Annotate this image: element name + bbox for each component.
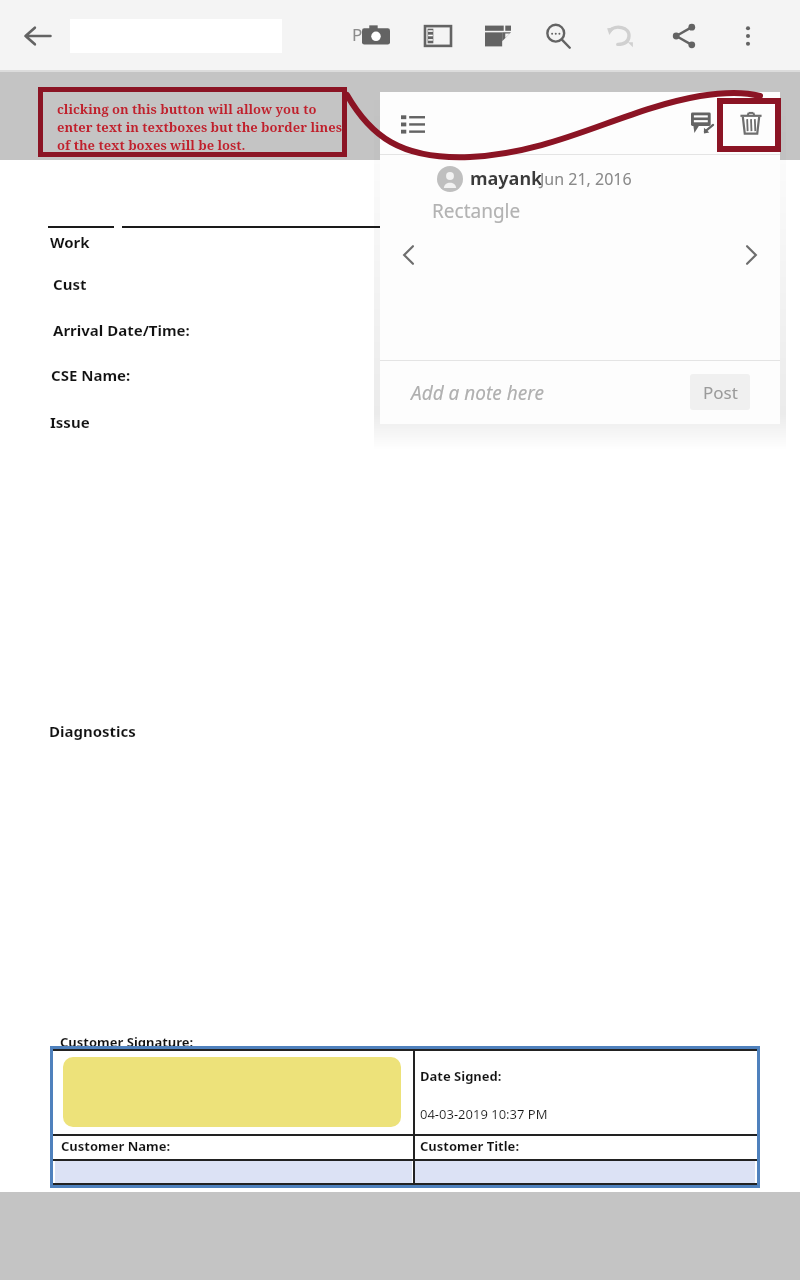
staticText: clicking on this button will allow you t…	[57, 100, 342, 154]
staticText: Post	[703, 381, 738, 404]
staticText: Customer Title:	[420, 1137, 520, 1155]
button[interactable]: Insert	[474, 12, 522, 60]
staticText: Cust	[53, 274, 87, 294]
button[interactable]: Undo	[596, 12, 644, 60]
button[interactable]: Comment list	[390, 100, 436, 146]
button[interactable]: Camera	[352, 12, 400, 60]
button[interactable]: More options	[724, 12, 772, 60]
staticText: Customer Name:	[61, 1137, 171, 1155]
staticText: Jun 21, 2016	[540, 168, 632, 190]
staticText: Diagnostics	[49, 721, 136, 741]
button[interactable]: Previous comment	[386, 232, 432, 278]
staticText: 04-03-2019 10:37 PM	[420, 1105, 548, 1123]
button[interactable]: Add a note here	[411, 380, 544, 406]
button[interactable]: Search	[534, 12, 582, 60]
button[interactable]: Reply	[680, 100, 726, 146]
staticText: P	[352, 23, 363, 46]
staticText: Arrival Date/Time:	[53, 320, 190, 340]
staticText: Customer Signature:	[60, 1033, 194, 1051]
button[interactable]: Delete	[728, 100, 774, 146]
button[interactable]	[63, 1057, 401, 1127]
staticText: mayank	[470, 166, 543, 191]
button[interactable]: Next comment	[728, 232, 774, 278]
staticText: Rectangle	[432, 198, 521, 224]
staticText: Date Signed:	[420, 1067, 502, 1085]
button[interactable]: Layout	[414, 12, 462, 60]
staticText: CSE Name:	[51, 365, 131, 385]
button[interactable]: Back	[14, 12, 62, 60]
button[interactable]: Post	[690, 374, 750, 410]
button[interactable]: Share	[660, 12, 708, 60]
staticText: Issue	[50, 412, 90, 432]
staticText: Work	[50, 232, 90, 252]
